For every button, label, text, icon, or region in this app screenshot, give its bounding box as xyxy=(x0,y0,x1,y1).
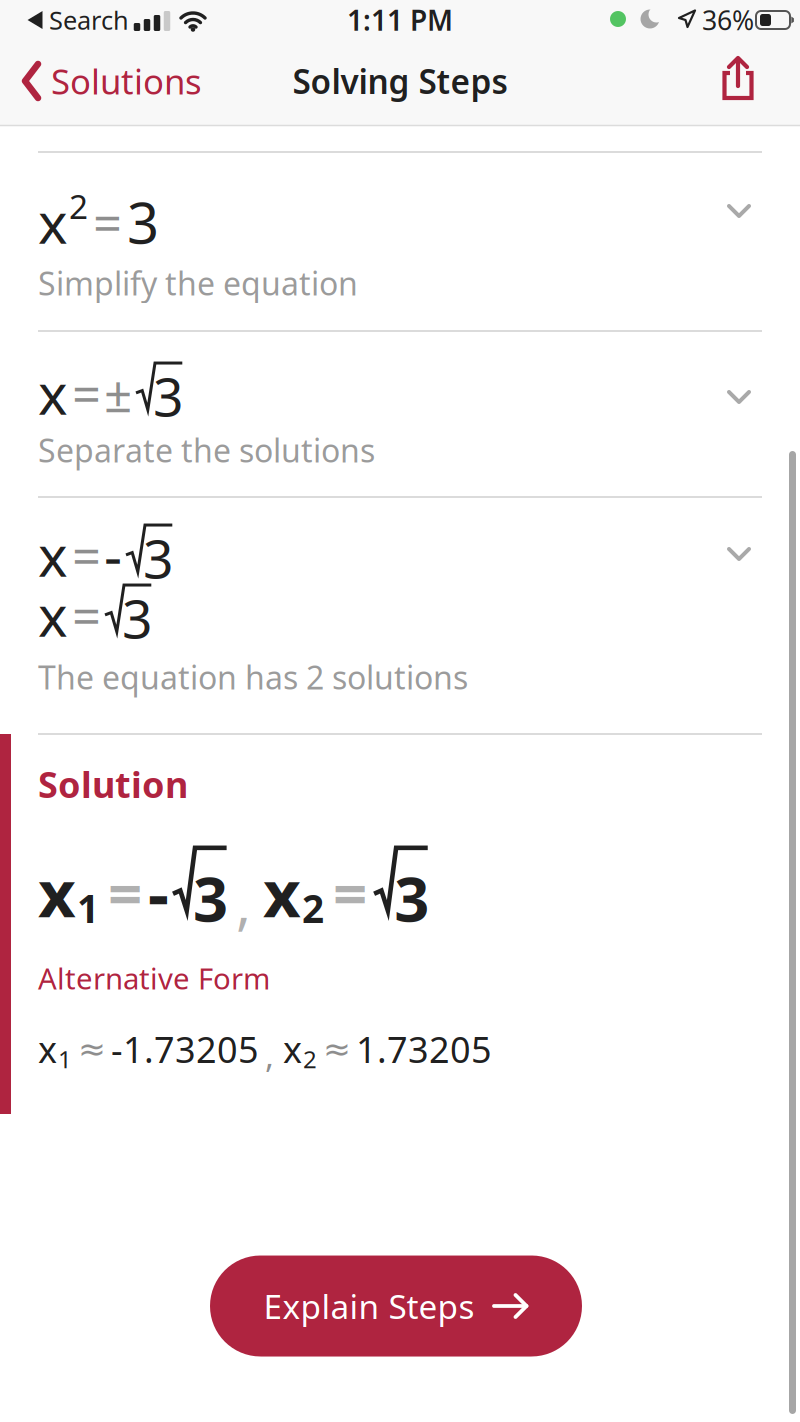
staticText: Simplify the equation xyxy=(38,262,358,304)
staticText: Solutions xyxy=(51,58,202,104)
staticText: - xyxy=(148,849,169,935)
button[interactable]: Explain Steps xyxy=(210,1255,582,1356)
staticText: 3 xyxy=(153,360,184,431)
staticText: ± xyxy=(104,360,132,426)
staticText: = xyxy=(72,359,101,427)
staticText: x xyxy=(38,356,68,430)
staticText: Solution xyxy=(38,760,188,808)
staticText: = xyxy=(108,852,142,932)
staticText: 36% xyxy=(702,2,754,38)
staticText: 3 xyxy=(394,857,429,938)
staticText: Explain Steps xyxy=(263,1284,474,1328)
staticText: 3 xyxy=(193,857,228,938)
staticText: , xyxy=(236,866,251,940)
staticText: Alternative Form xyxy=(38,958,270,997)
staticText: = xyxy=(93,188,122,256)
staticText: , xyxy=(265,1033,274,1077)
staticText: ≈ xyxy=(78,1030,106,1068)
staticText: 1 xyxy=(77,882,99,934)
staticText: ≈ xyxy=(323,1030,351,1068)
staticText: = xyxy=(333,852,367,932)
staticText: 1 xyxy=(58,1043,72,1075)
staticText: x xyxy=(38,578,68,652)
staticText: 1.73205 xyxy=(356,1025,492,1073)
staticText: Separate the solutions xyxy=(38,429,375,471)
staticText: x xyxy=(38,849,76,935)
button[interactable]: x xyxy=(0,331,800,497)
staticText: x xyxy=(38,1025,57,1073)
staticText: Solving Steps xyxy=(292,59,507,103)
button[interactable]: Solutions xyxy=(22,58,202,104)
staticText: 2 xyxy=(303,1043,317,1075)
staticText: 1:11 PM xyxy=(347,1,453,39)
staticText: 3 xyxy=(143,522,174,593)
staticText: x xyxy=(38,518,68,592)
staticText: x xyxy=(38,185,68,259)
staticText: - xyxy=(104,518,122,592)
staticText: 2 xyxy=(302,882,324,934)
staticText: Search xyxy=(49,3,129,37)
button[interactable]: x xyxy=(0,152,800,330)
button[interactable]: Share xyxy=(720,56,756,102)
staticText: 3 xyxy=(122,582,153,653)
staticText: = xyxy=(72,581,101,649)
staticText: x xyxy=(283,1025,302,1073)
staticText: x xyxy=(263,849,301,935)
staticText: 2 xyxy=(69,184,88,228)
staticText: = xyxy=(72,521,101,589)
button[interactable]: x xyxy=(0,497,800,734)
staticText: -1.73205 xyxy=(111,1025,259,1073)
staticText: The equation has 2 solutions xyxy=(38,656,468,698)
staticText: 3 xyxy=(127,185,159,259)
